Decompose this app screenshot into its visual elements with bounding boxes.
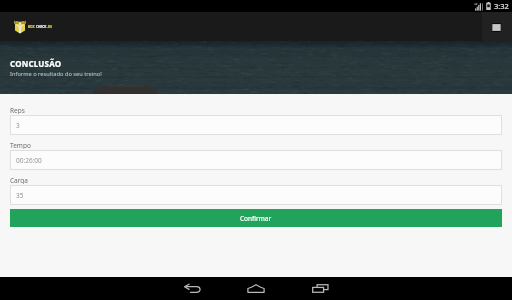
button[interactable]: 00:26:00 bbox=[10, 150, 502, 170]
staticText: Confirmar bbox=[240, 214, 272, 223]
staticText: 3:32 bbox=[494, 1, 509, 11]
button[interactable]: 3 bbox=[10, 115, 502, 135]
button[interactable]: Home bbox=[224, 277, 288, 300]
button[interactable]: Recents bbox=[288, 277, 352, 300]
staticText: Tempo bbox=[10, 141, 31, 149]
staticText: 3 bbox=[16, 121, 20, 130]
staticText: -IN bbox=[47, 25, 52, 29]
staticText: Carga bbox=[10, 176, 29, 184]
button[interactable]: Back bbox=[160, 277, 224, 300]
staticText: Reps bbox=[10, 106, 25, 114]
staticText: CHECK bbox=[36, 25, 47, 29]
staticText: 00:26:00 bbox=[16, 156, 42, 165]
staticText: CONCLUSÃO bbox=[10, 58, 62, 69]
staticText: 35 bbox=[16, 191, 24, 200]
button[interactable]: More options bbox=[488, 19, 504, 35]
button[interactable]: Confirmar bbox=[10, 209, 502, 227]
staticText: BOX bbox=[28, 25, 35, 29]
staticText: Informe o resultado do seu treino! bbox=[10, 70, 102, 78]
button[interactable]: 35 bbox=[10, 185, 502, 205]
